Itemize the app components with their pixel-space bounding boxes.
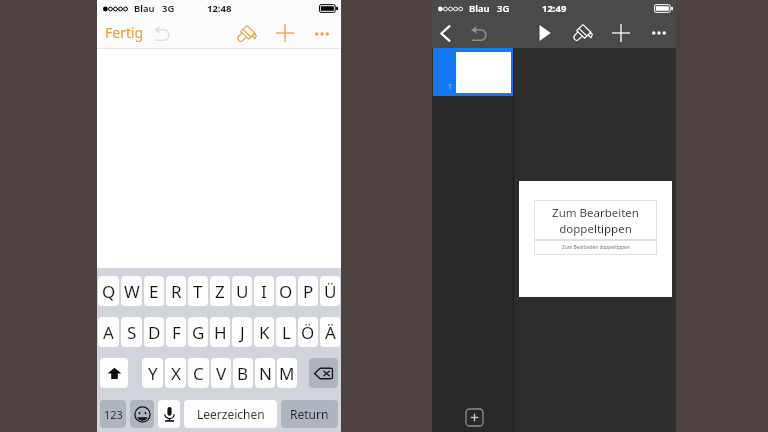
button[interactable]: L [276,317,296,347]
button[interactable]: Y [142,358,163,388]
staticText: 12:48 [207,2,232,15]
button[interactable]: S [121,317,142,347]
button[interactable]: Ü [320,276,340,306]
button[interactable]: V [211,358,231,388]
button[interactable]: D [144,317,164,347]
button[interactable]: Format [233,20,260,47]
staticText: 123 [104,407,123,422]
staticText: Zum Bearbeiten doppeltippen [552,205,639,236]
staticText: O [279,280,293,303]
staticText: Return [290,406,329,422]
button[interactable]: Ä [320,317,340,347]
staticText: W [124,280,140,303]
button[interactable]: R [166,276,186,306]
staticText: A [103,321,114,344]
button[interactable] [309,358,338,388]
staticText: R [171,280,182,303]
button[interactable]: B [233,358,253,388]
button[interactable]: More options [645,19,672,46]
staticText: T [193,280,203,303]
button[interactable]: Z [210,276,230,306]
button[interactable]: T [188,276,208,306]
staticText: I [261,280,267,303]
button[interactable]: Return [281,400,338,428]
button[interactable]: Back [433,21,457,45]
button[interactable]: J [232,317,252,347]
staticText: Blau [134,2,155,15]
button[interactable]: K [254,317,274,347]
staticText: E [149,280,159,303]
button[interactable]: N [255,358,275,388]
staticText: B [237,362,249,385]
button[interactable]: Add [271,19,299,47]
button[interactable] [130,400,154,428]
button[interactable]: E [144,276,164,306]
button[interactable]: M [277,358,297,388]
button[interactable]: Add [607,19,635,47]
staticText: Blau [469,2,490,15]
button[interactable]: W [121,276,142,306]
staticText: D [148,321,161,344]
button[interactable]: Undo [466,21,490,45]
staticText: P [303,280,314,303]
staticText: J [240,321,245,344]
button[interactable]: H [210,317,230,347]
staticText: Z [215,280,225,303]
staticText: 12:49 [542,2,567,15]
staticText: Y [148,362,158,385]
staticText: Ä [325,321,336,344]
staticText: Fertig [105,23,144,42]
button[interactable]: Q [98,276,119,306]
staticText: L [282,321,291,344]
button[interactable]: Play [532,21,556,45]
staticText: V [216,362,227,385]
button[interactable]: 1 [433,48,514,96]
staticText: M [279,362,295,385]
button[interactable]: Add slide [465,408,484,427]
button[interactable]: X [165,358,186,388]
staticText: X [171,362,181,385]
staticText: Q [102,280,116,303]
staticText: C [193,362,204,385]
button[interactable]: More options [308,20,335,47]
button[interactable]: C [188,358,209,388]
staticText: 1 [448,82,453,92]
button[interactable]: O [276,276,296,306]
staticText: 3G [162,2,175,15]
staticText: S [127,321,137,344]
staticText: K [259,321,270,344]
button[interactable]: U [232,276,252,306]
button[interactable]: I [254,276,274,306]
staticText: Ü [324,280,337,303]
button[interactable]: F [166,317,186,347]
staticText: F [172,321,181,344]
button[interactable]: P [298,276,318,306]
button[interactable] [100,358,128,388]
button[interactable]: G [188,317,208,347]
staticText: G [192,321,205,344]
staticText: Leerzeichen [197,406,265,422]
button[interactable]: Fertig [99,19,150,46]
button[interactable]: 123 [100,400,126,428]
button[interactable]: Ö [298,317,318,347]
button[interactable]: Leerzeichen [184,400,277,428]
staticText: Zum Bearbeiten doppeltippen [562,244,630,251]
button[interactable]: Zum Bearbeiten doppeltippen [519,181,672,297]
staticText: Ö [301,321,315,344]
staticText: N [259,362,272,385]
button[interactable]: Format [569,19,596,46]
staticText: H [214,321,227,344]
staticText: 3G [497,2,510,15]
button[interactable] [158,400,180,428]
button[interactable]: Undo [149,21,173,45]
button[interactable]: A [98,317,119,347]
staticText: U [236,280,249,303]
